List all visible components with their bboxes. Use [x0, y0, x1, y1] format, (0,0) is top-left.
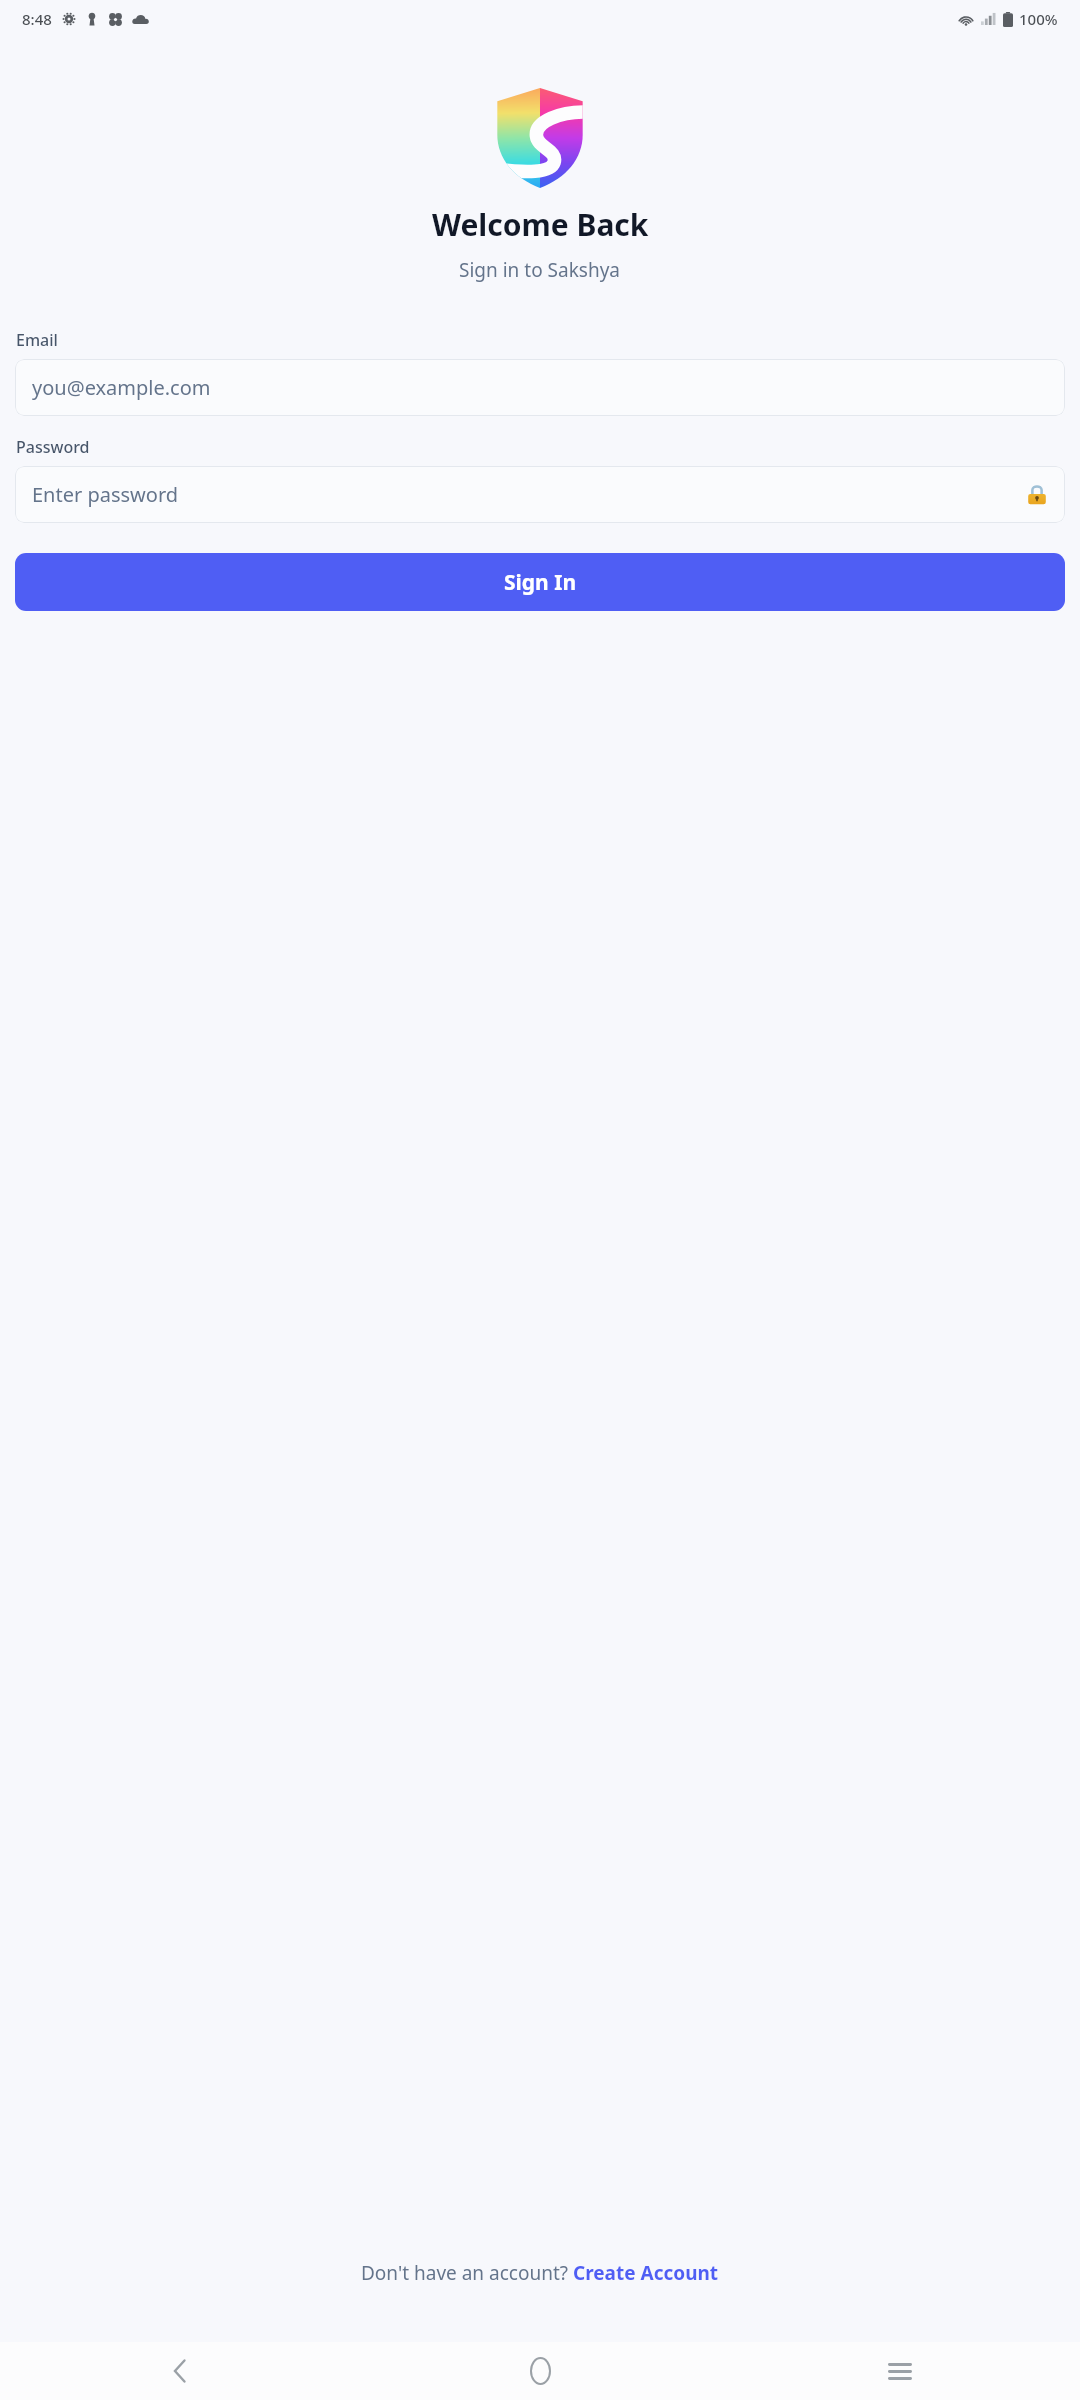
staticText: Enter password	[32, 481, 179, 508]
button[interactable]: Recent apps	[720, 2342, 1080, 2400]
staticText: Email	[16, 329, 58, 351]
button[interactable]: Back	[0, 2342, 360, 2400]
staticText: Welcome Back	[432, 204, 649, 245]
staticText: 100%	[1019, 9, 1058, 29]
staticText: Password	[16, 436, 90, 458]
staticText: Sign in to Sakshya	[459, 257, 621, 283]
staticText: Don't have an account? Create Account	[361, 2260, 719, 2286]
button[interactable]: Enter password	[15, 466, 1065, 523]
button[interactable]: Don't have an account? Create Account	[0, 2252, 1080, 2294]
staticText: Sign In	[504, 568, 577, 597]
staticText: you@example.com	[32, 374, 211, 401]
button[interactable]: Home	[360, 2342, 720, 2400]
button[interactable]: Sign In	[15, 553, 1065, 611]
staticText: 8:48	[22, 9, 52, 29]
button[interactable]: you@example.com	[15, 359, 1065, 416]
